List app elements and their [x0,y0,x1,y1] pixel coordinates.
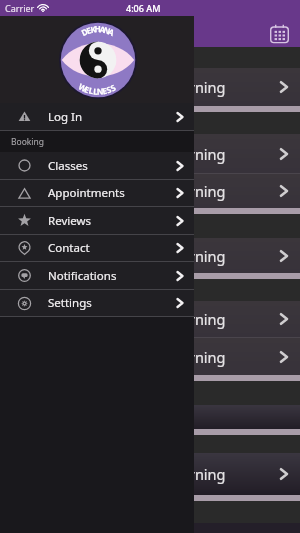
staticText: Contact [48,240,90,256]
staticText: Morning [167,144,226,164]
staticText: Morning [167,464,226,484]
button[interactable]: Settings [0,290,194,316]
staticText: Booking [11,136,45,148]
button[interactable]: Notifications [0,262,194,289]
button[interactable]: Morning [0,238,300,273]
button[interactable]: Log In [0,103,194,130]
button[interactable]: Morning [0,68,300,106]
staticText: Log In [48,109,83,125]
staticText: Appointments [48,185,125,201]
button[interactable]: Classes [0,152,194,179]
button[interactable]: Calendar [266,20,292,46]
staticText: Reviews [48,213,92,229]
staticText: Carrier [5,2,35,14]
button[interactable]: Morning [0,301,300,337]
staticText: Morning [167,309,226,329]
button[interactable]: Reviews [0,207,194,234]
button[interactable]: Morning [0,134,300,173]
button[interactable]: Morning [0,453,300,495]
button[interactable]: Morning [0,338,300,375]
button[interactable]: Appointments [0,180,194,206]
staticText: Morning [167,246,226,266]
staticText: Morning [167,347,226,367]
staticText: Classes [48,158,88,174]
button[interactable] [0,405,300,429]
staticText: Notifications [48,268,117,284]
staticText: 4:06 AM [126,2,161,14]
button[interactable]: Contact [0,235,194,261]
staticText: Settings [48,295,92,311]
staticText: Morning [167,181,226,201]
button[interactable]: Morning [0,174,300,208]
staticText: Morning [167,77,226,97]
